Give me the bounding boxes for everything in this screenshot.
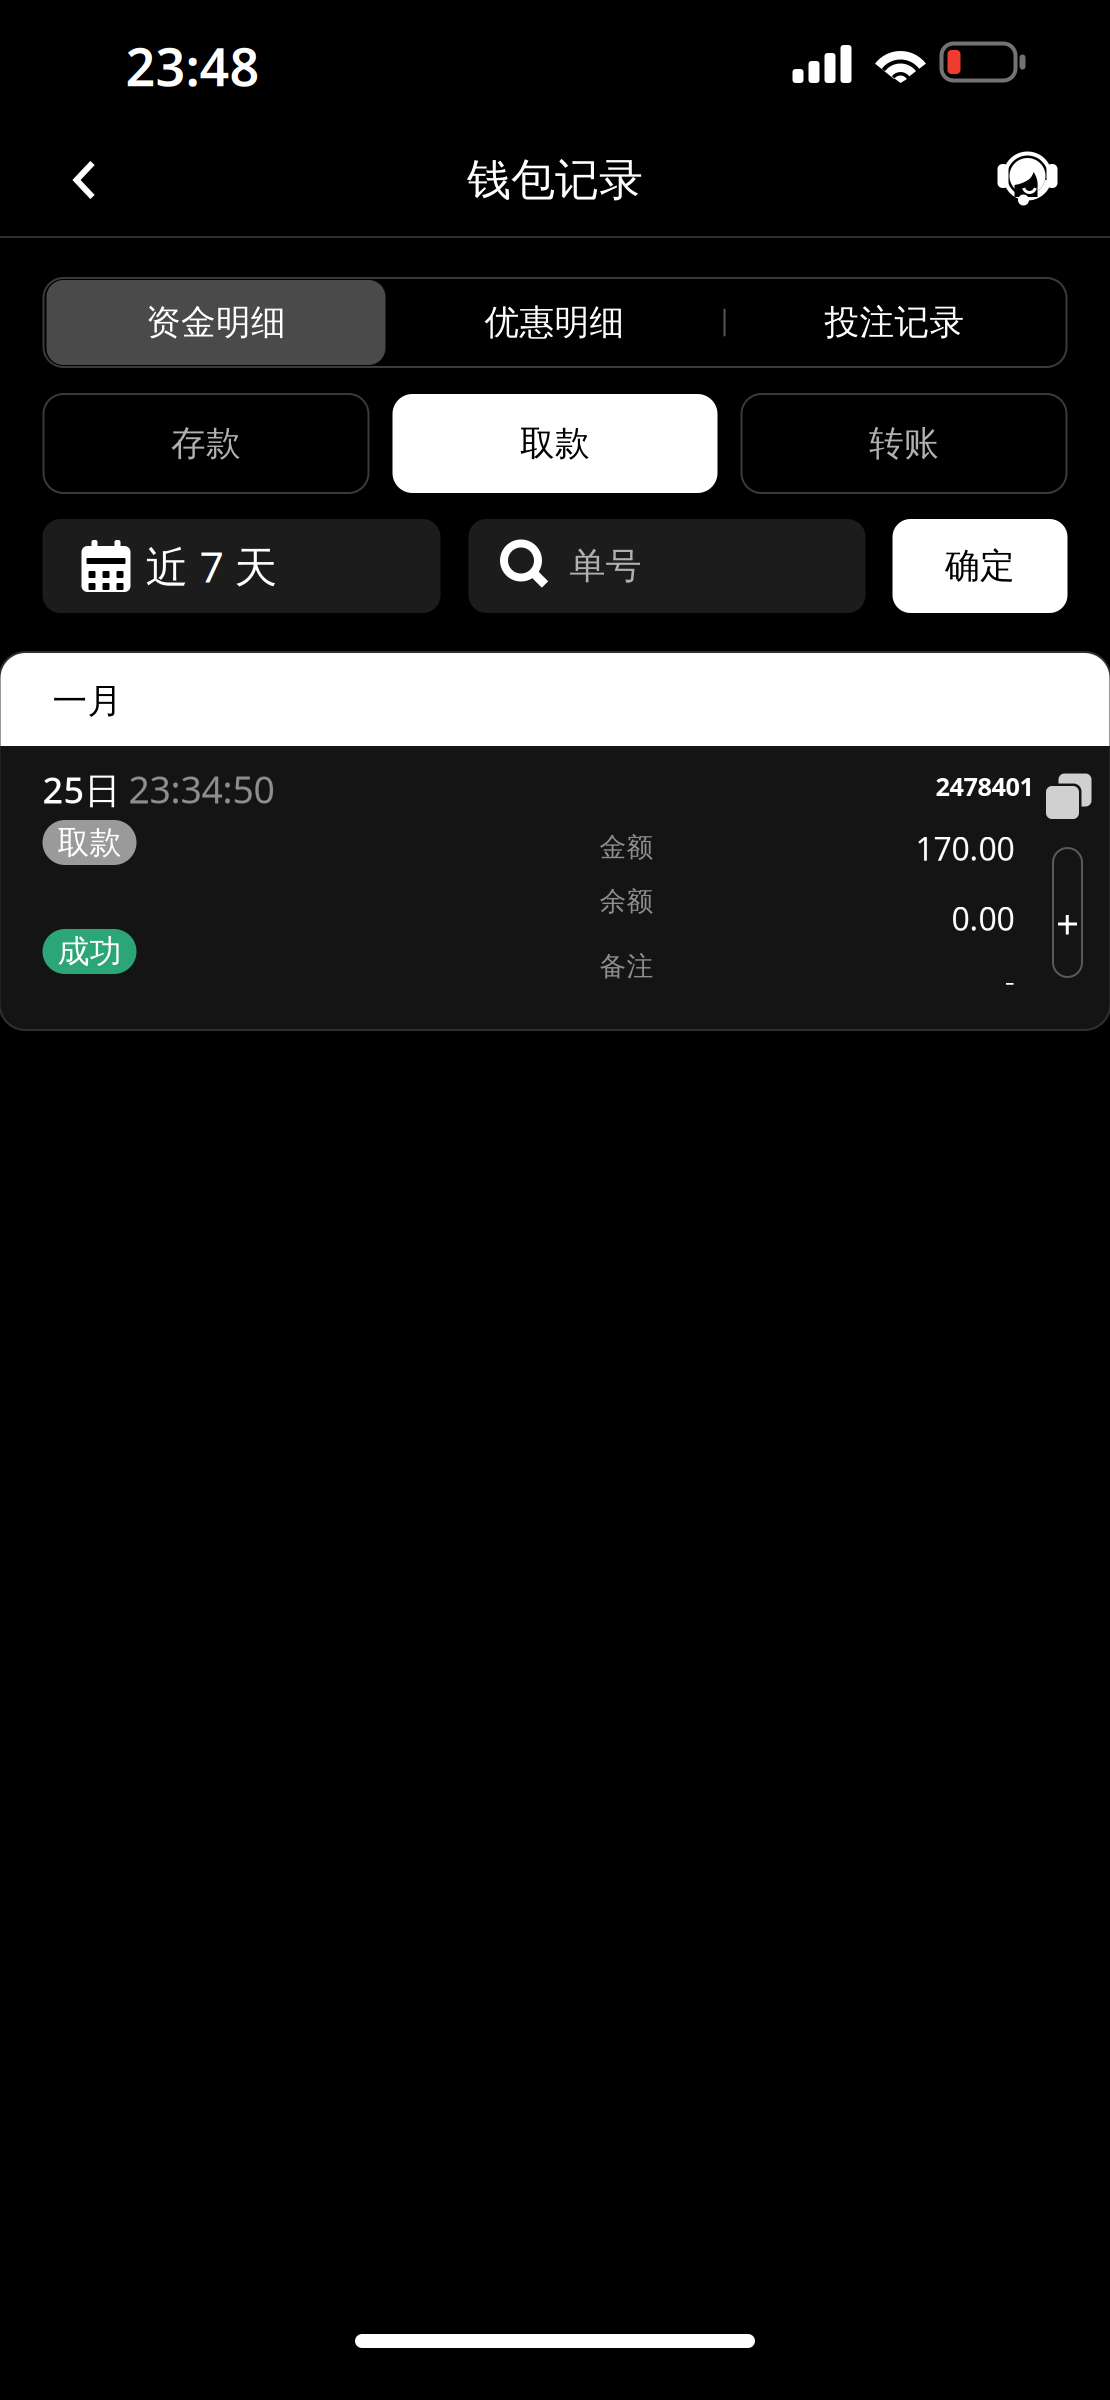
staticText: 存款 <box>171 422 241 465</box>
staticText: 确定 <box>945 545 1015 587</box>
staticText: 170.00 <box>915 827 1014 869</box>
button[interactable]: Expand details <box>1053 848 1082 977</box>
button[interactable]: 近 7 天 <box>42 519 440 613</box>
staticText: 取款 <box>57 823 121 862</box>
staticText: 资金明细 <box>146 301 286 344</box>
button[interactable]: Back <box>36 124 132 236</box>
button[interactable]: 资金明细 <box>46 280 385 365</box>
staticText: 25日 <box>42 766 120 813</box>
staticText: 取款 <box>520 422 590 465</box>
button[interactable]: 单号 <box>468 519 865 613</box>
button[interactable]: 转账 <box>741 394 1066 493</box>
staticText: - <box>1004 959 1014 1001</box>
staticText: 近 7 天 <box>145 538 277 594</box>
staticText: + <box>1055 896 1079 951</box>
staticText: 成功 <box>57 932 121 971</box>
button[interactable]: 确定 <box>892 519 1067 613</box>
staticText: 转账 <box>869 422 939 465</box>
button[interactable]: 取款 <box>392 394 717 493</box>
staticText: 优惠明细 <box>484 301 624 344</box>
staticText: 0.00 <box>951 897 1014 939</box>
button[interactable]: Customer support <box>975 124 1079 236</box>
staticText: 备注 <box>599 950 653 983</box>
button[interactable]: 25日 <box>0 746 1110 1030</box>
staticText: 金额 <box>599 831 653 864</box>
button[interactable]: 优惠明细 <box>385 280 723 365</box>
staticText: 2478401 <box>935 769 1033 803</box>
staticText: 投注记录 <box>824 301 964 344</box>
staticText: 余额 <box>599 885 653 918</box>
staticText: 一月 <box>52 680 122 722</box>
staticText: 23:48 <box>125 31 259 101</box>
staticText: 23:34:50 <box>128 764 274 814</box>
staticText: 钱包记录 <box>467 153 643 207</box>
button[interactable]: 存款 <box>43 394 368 493</box>
staticText: 单号 <box>569 544 641 588</box>
button[interactable]: 投注记录 <box>725 280 1063 365</box>
